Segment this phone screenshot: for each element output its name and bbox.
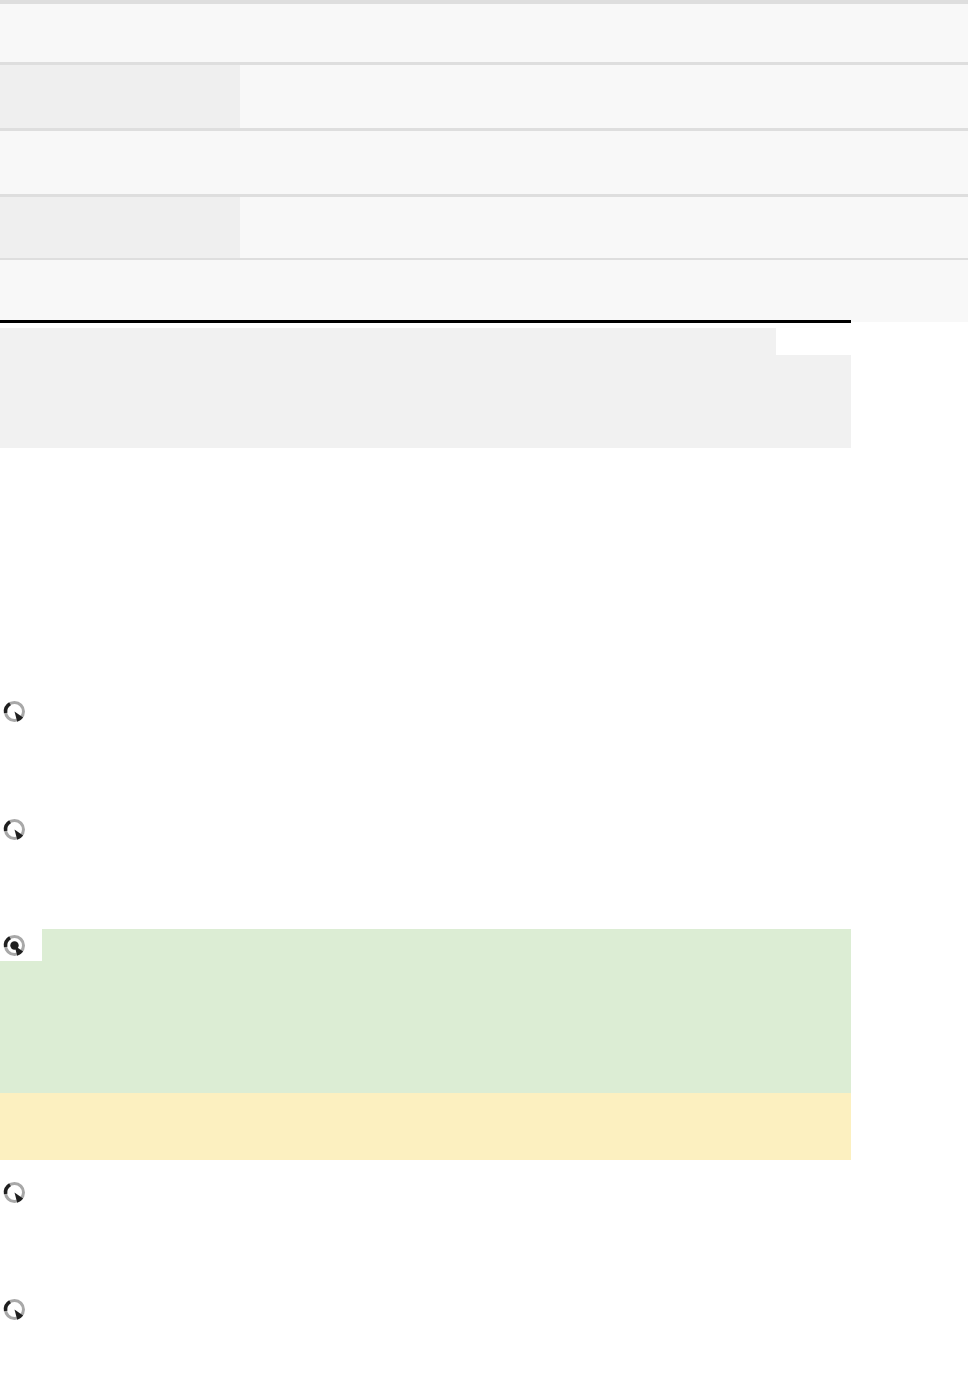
button[interactable]: Selected option <box>0 931 42 959</box>
button[interactable]: Option 4 <box>0 1178 42 1206</box>
button[interactable]: Option 5 <box>0 1295 42 1323</box>
button[interactable]: Option 2 <box>0 815 42 843</box>
button[interactable] <box>0 260 968 322</box>
button[interactable]: Option 1 <box>0 697 42 725</box>
